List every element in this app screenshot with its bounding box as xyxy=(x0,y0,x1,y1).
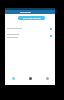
staticText: Bluetooth xyxy=(20,11,31,14)
button[interactable] xyxy=(5,26,55,31)
button[interactable]: Search xyxy=(22,73,38,83)
button[interactable]: SCAN FOR DEVICES xyxy=(18,16,45,20)
button[interactable]: Paired devices xyxy=(5,73,21,83)
button[interactable]: Settings xyxy=(39,73,55,83)
staticText: SCAN FOR DEVICES xyxy=(23,17,41,20)
button[interactable] xyxy=(5,32,55,39)
